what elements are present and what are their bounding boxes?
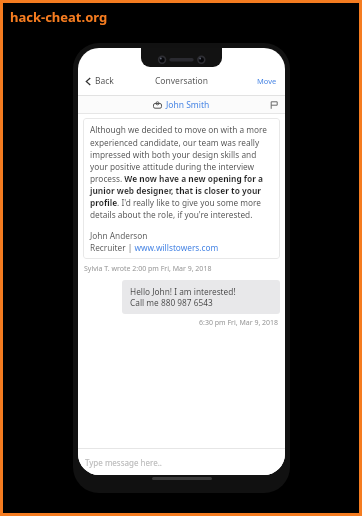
button[interactable]: Hello John! I am interested!: [122, 280, 280, 314]
button[interactable]: Flag: [269, 100, 279, 110]
staticText: Type message here..: [85, 457, 162, 468]
button[interactable]: John Smith: [78, 96, 285, 113]
button[interactable]: Move: [249, 73, 285, 89]
staticText: hack-cheat.org: [10, 8, 108, 26]
staticText: Sylvia T. wrote 2:00 pm Fri, Mar 9, 2018: [84, 264, 212, 274]
staticText: John Smith: [166, 99, 210, 111]
staticText: Move: [257, 76, 277, 86]
staticText: Hello John! I am interested!: [130, 286, 236, 297]
staticText: John Anderson: [90, 230, 148, 241]
staticText: Call me 880 987 6543: [130, 297, 213, 308]
staticText: Back: [95, 75, 114, 87]
staticText: 6:30 pm Fri, Mar 9, 2018: [199, 318, 279, 328]
staticText: Recruiter | www.willstowers.com: [90, 242, 219, 253]
button[interactable]: Back: [78, 72, 120, 90]
button[interactable]: Although we decided to move on with a mo…: [83, 118, 280, 259]
staticText: Although we decided to move on with a mo…: [90, 124, 273, 220]
staticText: Conversation: [155, 75, 208, 87]
button[interactable]: Type message here..: [78, 449, 285, 475]
